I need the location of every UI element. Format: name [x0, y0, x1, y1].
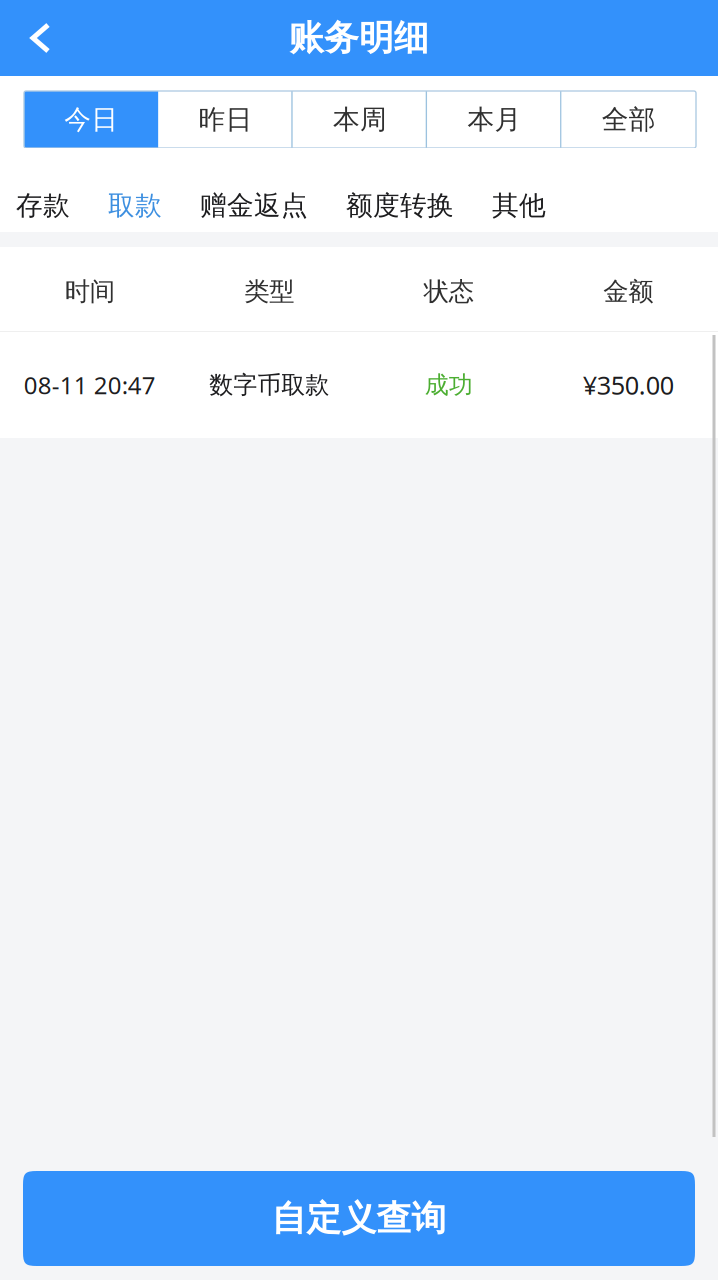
button[interactable]: 自定义查询 [23, 1171, 695, 1266]
button[interactable]: 本周 [293, 91, 427, 148]
staticText: 账务明细 [289, 17, 429, 59]
staticText: 数字币取款 [209, 370, 329, 400]
button[interactable]: 其他 [492, 189, 546, 222]
staticText: 成功 [425, 370, 473, 400]
staticText: 存款 [16, 189, 70, 222]
button[interactable]: 今日 [24, 91, 158, 148]
staticText: 赠金返点 [200, 189, 308, 222]
button[interactable]: 昨日 [158, 91, 293, 148]
staticText: 本月 [467, 103, 521, 136]
staticText: 状态 [424, 276, 474, 307]
staticText: 自定义查询 [271, 1197, 446, 1240]
staticText: 全部 [602, 103, 656, 136]
button[interactable]: 返回 [0, 0, 81, 76]
staticText: 昨日 [199, 103, 253, 136]
staticText: 08-11 20:47 [24, 369, 156, 401]
staticText: 本周 [333, 103, 387, 136]
staticText: 时间 [65, 276, 115, 307]
staticText: 类型 [244, 276, 294, 307]
button[interactable]: 额度转换 [346, 189, 454, 222]
button[interactable]: 08-11 20:47 [0, 332, 718, 438]
staticText: 额度转换 [346, 189, 454, 222]
button[interactable]: 取款 [108, 189, 162, 222]
staticText: 取款 [108, 189, 162, 222]
staticText: 今日 [64, 103, 118, 136]
button[interactable]: 本月 [427, 91, 562, 148]
button[interactable]: 赠金返点 [200, 189, 308, 222]
button[interactable]: 全部 [562, 91, 696, 148]
staticText: 金额 [603, 276, 653, 307]
staticText: 其他 [492, 189, 546, 222]
staticText: ¥350.00 [583, 368, 674, 402]
button[interactable]: 存款 [16, 189, 70, 222]
